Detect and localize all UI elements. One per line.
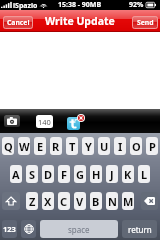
button[interactable]: Q — [2, 137, 14, 155]
staticText: I — [118, 139, 123, 154]
staticText: N — [108, 194, 117, 209]
staticText: V — [76, 194, 84, 209]
staticText: C — [60, 194, 68, 209]
staticText: A — [12, 167, 20, 182]
staticText: Cancel — [7, 18, 30, 27]
button[interactable]: Backspace — [141, 192, 158, 210]
button[interactable]: Camera — [4, 115, 20, 127]
staticText: 140 — [38, 117, 51, 127]
button[interactable]: R — [50, 137, 62, 155]
staticText: 92% — [129, 0, 144, 10]
staticText: 123 — [3, 224, 16, 234]
button[interactable]: V — [74, 192, 86, 210]
button[interactable]: K — [122, 165, 134, 183]
button[interactable]: X — [42, 192, 54, 210]
button[interactable]: D — [42, 165, 54, 183]
staticText: B — [92, 194, 100, 209]
button[interactable]: Z — [26, 192, 38, 210]
staticText: D — [44, 167, 53, 182]
button[interactable]: Y — [82, 137, 94, 155]
staticText: Write Update — [45, 14, 115, 28]
staticText: Y — [85, 139, 92, 154]
button[interactable]: C — [58, 192, 70, 210]
staticText: Z — [29, 194, 36, 209]
button[interactable]: U — [98, 137, 110, 155]
staticText: Q — [4, 139, 13, 154]
button[interactable]: Cancel — [3, 16, 33, 29]
button[interactable]: space — [40, 220, 118, 238]
button[interactable]: Send — [132, 16, 158, 29]
button[interactable]: L — [138, 165, 150, 183]
button[interactable]: T — [66, 137, 78, 155]
button[interactable]: M — [122, 192, 134, 210]
staticText: J — [110, 167, 114, 182]
button[interactable]: I — [114, 137, 126, 155]
staticText: W — [19, 139, 30, 154]
staticText: X — [44, 194, 52, 209]
button[interactable]: A — [10, 165, 22, 183]
button[interactable]: G — [74, 165, 86, 183]
button[interactable]: O — [130, 137, 142, 155]
button[interactable]: F — [58, 165, 70, 183]
staticText: L — [141, 167, 148, 182]
staticText: iSpazio — [13, 1, 38, 11]
staticText: return — [128, 224, 152, 235]
button[interactable]: S — [26, 165, 38, 183]
staticText: space — [68, 224, 90, 235]
staticText: 15:38 - 90MB — [58, 0, 102, 10]
button[interactable]: Return — [122, 220, 157, 238]
staticText: K — [124, 167, 132, 182]
staticText: R — [52, 139, 60, 154]
staticText: M — [123, 194, 134, 209]
staticText: H — [92, 167, 101, 182]
button[interactable]: Twitter — [67, 117, 80, 130]
staticText: U — [100, 139, 109, 154]
button[interactable]: N — [106, 192, 118, 210]
staticText: E — [37, 139, 44, 154]
button[interactable]: Shift — [2, 192, 20, 210]
staticText: Send — [137, 18, 154, 27]
staticText: F — [61, 167, 68, 182]
staticText: O — [132, 139, 141, 154]
button[interactable]: E — [34, 137, 46, 155]
button[interactable]: Change keyboard — [21, 220, 36, 238]
staticText: T — [69, 139, 76, 154]
staticText: G — [76, 167, 84, 182]
staticText: P — [149, 139, 156, 154]
button[interactable]: H — [90, 165, 102, 183]
button[interactable]: B — [90, 192, 102, 210]
button[interactable]: Numbers — [2, 220, 17, 238]
button[interactable]: W — [18, 137, 30, 155]
button[interactable]: P — [146, 137, 158, 155]
button[interactable]: J — [106, 165, 118, 183]
staticText: S — [29, 167, 36, 182]
